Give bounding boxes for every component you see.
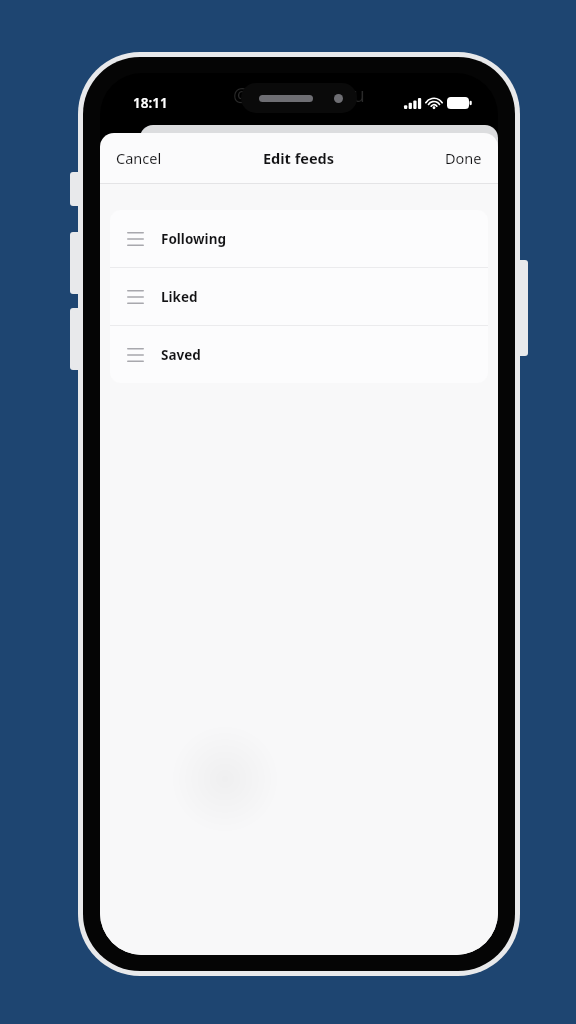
staticText: Saved — [161, 346, 201, 364]
button[interactable]: Reorder Saved — [110, 326, 488, 383]
button[interactable]: Reorder Following — [110, 210, 488, 267]
button[interactable]: Reorder Liked — [110, 268, 488, 325]
staticText: Done — [445, 148, 482, 168]
staticText: @oncescuradu — [233, 82, 365, 108]
other: Reorder Following — [127, 232, 144, 246]
other: Reorder Saved — [127, 348, 144, 362]
other: Reorder Liked — [127, 290, 144, 304]
staticText: Edit feeds — [263, 148, 335, 168]
staticText: Liked — [161, 288, 198, 306]
staticText: Following — [161, 230, 226, 248]
staticText: 18:11 — [133, 94, 168, 112]
staticText: Cancel — [116, 148, 162, 168]
button[interactable]: Done — [429, 140, 498, 176]
button[interactable]: Cancel — [100, 140, 178, 176]
